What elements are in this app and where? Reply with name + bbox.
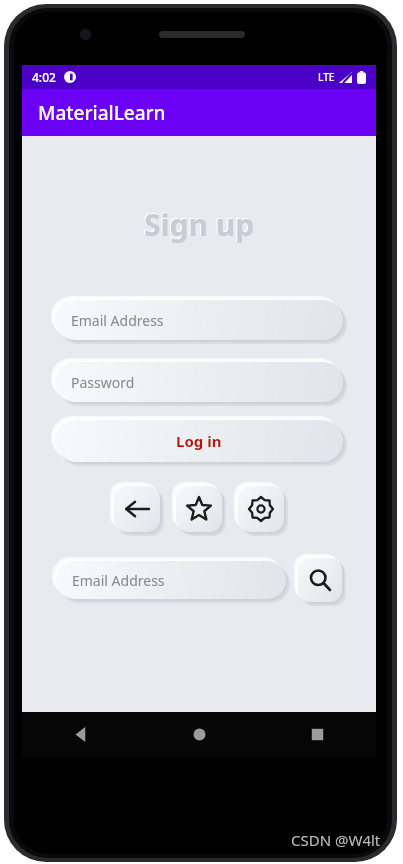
staticText: CSDN @W4lt [291,830,381,850]
button[interactable]: Back [22,712,140,757]
button[interactable]: Password [55,362,343,402]
button[interactable]: Home [140,712,258,757]
staticText: Sign up [144,204,255,245]
staticText: Log in [176,431,222,451]
staticText: MaterialLearn [38,100,166,126]
staticText: Email Address [72,571,165,590]
button[interactable]: Favorite [176,486,222,532]
button[interactable]: Back [114,486,160,532]
button[interactable]: Email Address [56,561,286,599]
staticText: LTE [318,70,335,84]
staticText: Password [71,373,135,392]
staticText: 4:02 [32,69,56,85]
button[interactable]: Log in [55,420,343,462]
button[interactable]: Settings [238,486,284,532]
staticText: Email Address [71,311,164,330]
staticText: Sign up [143,203,254,244]
button[interactable]: Search [298,558,342,602]
button[interactable]: Email Address [55,300,343,340]
button[interactable]: Recents [258,712,376,757]
